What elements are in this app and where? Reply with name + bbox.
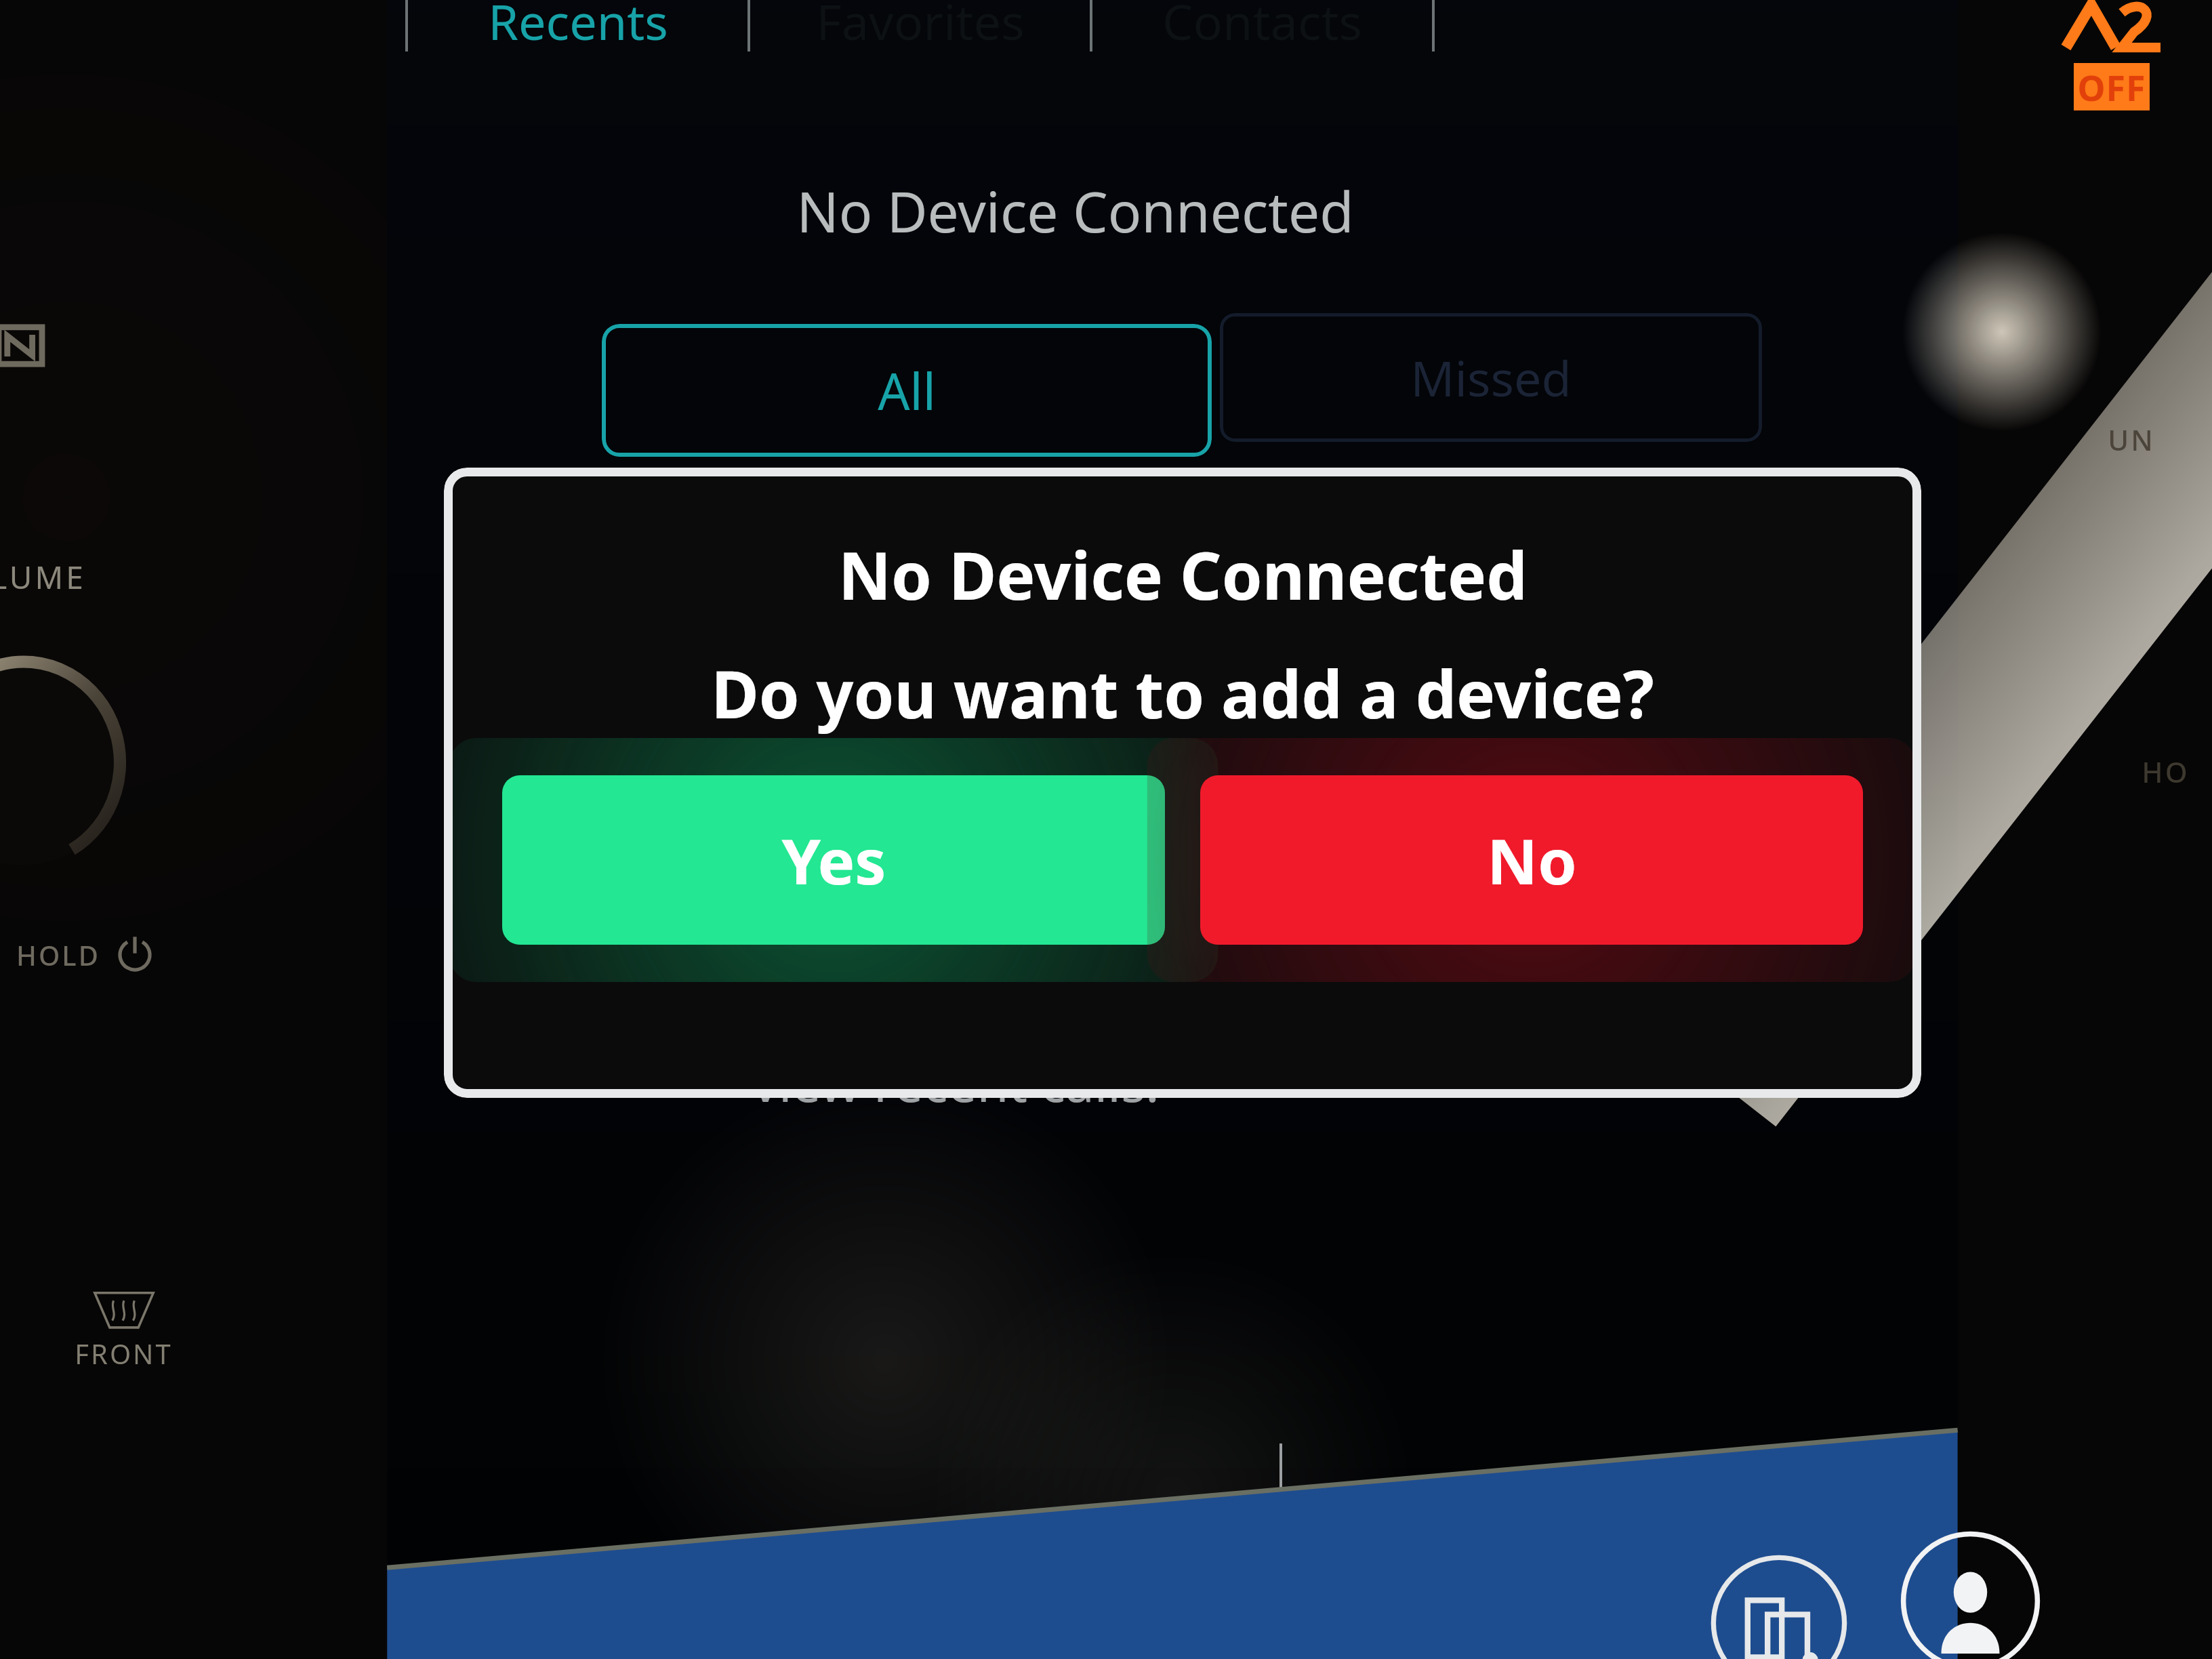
button[interactable]: Recents: [407, 0, 749, 64]
button[interactable]: Favorites: [749, 0, 1091, 64]
staticText: No Device Connected: [838, 530, 1528, 619]
button[interactable]: Contacts: [1898, 1528, 2043, 1659]
button[interactable]: No: [1200, 775, 1863, 945]
staticText: Favorites: [816, 0, 1025, 52]
button[interactable]: All: [602, 324, 1212, 457]
staticText: HO: [2142, 752, 2190, 791]
staticText: LUME: [0, 556, 86, 598]
button[interactable]: [1433, 0, 1776, 64]
staticText: Yes: [781, 818, 886, 903]
staticText: No: [1487, 818, 1577, 903]
button[interactable]: Add Device: [678, 1538, 1038, 1622]
button[interactable]: Missed: [1220, 313, 1762, 442]
button[interactable]: Yes: [502, 775, 1165, 945]
staticText: OFF: [2077, 63, 2146, 110]
staticText: Do you want to add a device?: [711, 649, 1654, 737]
staticText: UN: [2108, 420, 2155, 459]
staticText: Contacts: [1162, 0, 1362, 52]
staticText: No Device Connected: [796, 173, 1354, 249]
staticText: All: [878, 356, 936, 425]
staticText: Keypad: [1477, 1454, 1633, 1515]
staticText: FRONT: [75, 1335, 173, 1372]
staticText: Missed: [1410, 344, 1572, 411]
button[interactable]: NFC: [0, 319, 47, 373]
button[interactable]: Device settings: [1708, 1552, 1850, 1659]
button[interactable]: Contacts: [1091, 0, 1433, 64]
staticText: view recent calls.: [752, 1047, 1160, 1118]
staticText: Recents: [488, 0, 668, 52]
staticText: HOLD: [16, 937, 100, 973]
